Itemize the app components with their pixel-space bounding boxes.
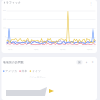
staticText: 日本	[22, 69, 28, 73]
staticText: 3月22日	[87, 49, 92, 50]
staticText: トラフィック	[3, 1, 21, 4]
staticText: ⋮	[89, 1, 93, 6]
staticText: 400	[3, 18, 6, 20]
staticText: 3月8日	[34, 49, 38, 50]
staticText: アメリカ	[5, 69, 17, 73]
staticText: クリックすると詳細が表示されます	[29, 76, 45, 78]
staticText: 0	[5, 36, 6, 38]
button[interactable]: Add	[85, 60, 88, 64]
button[interactable]: 国	[76, 60, 82, 64]
staticText: ドイツ	[32, 69, 41, 73]
staticText: <	[92, 60, 94, 64]
button[interactable]: Share	[91, 60, 94, 64]
button[interactable]: More options	[89, 1, 93, 6]
staticText: 地域別の訪問数	[3, 61, 24, 64]
staticText: 国	[78, 61, 81, 64]
staticText: +	[86, 60, 88, 64]
